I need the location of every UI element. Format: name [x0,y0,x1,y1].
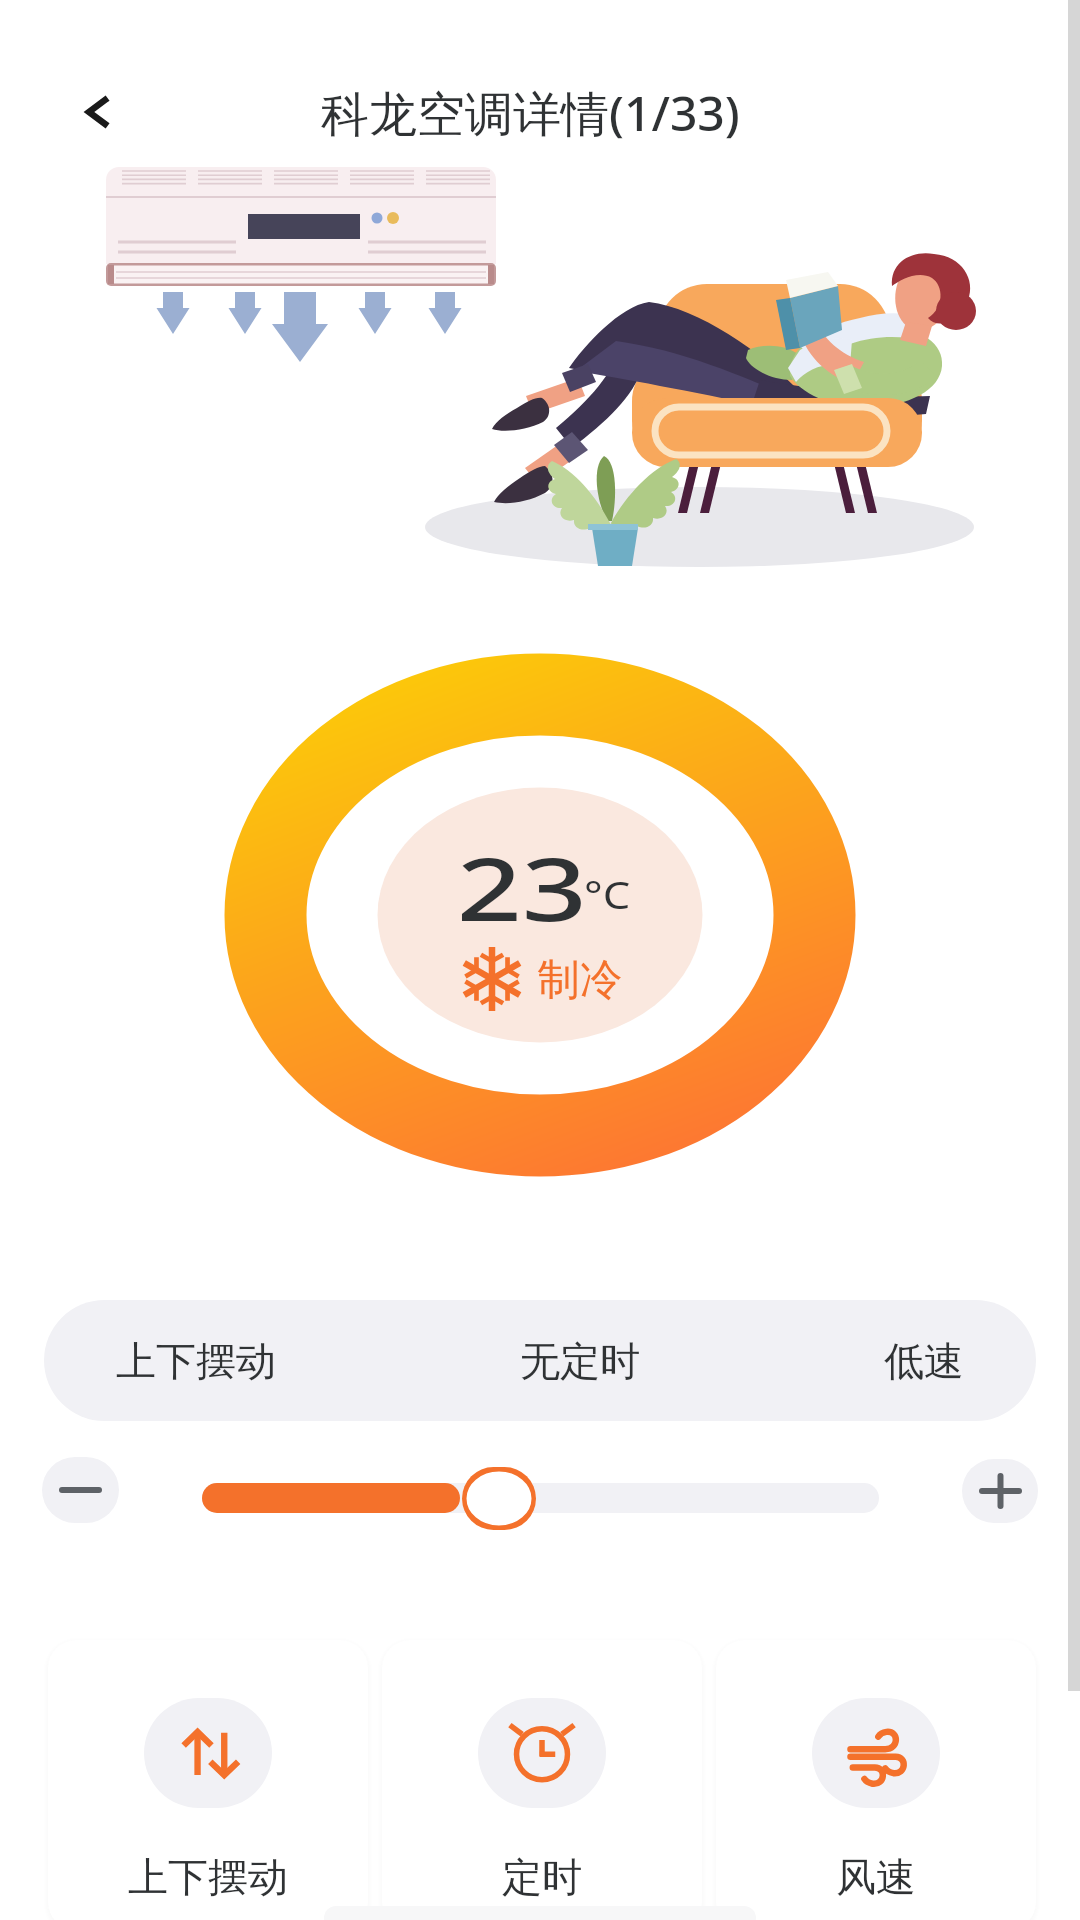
staticText: 风速 [836,1852,916,1902]
button[interactable]: Temperature slider [462,1467,536,1530]
staticText: 上下摆动 [128,1852,288,1902]
staticText: °C [584,869,631,920]
staticText: 上下摆动 [116,1336,276,1386]
staticText: 23 [457,829,587,930]
staticText: 制冷 [538,952,622,1005]
button[interactable]: Increase temperature [962,1459,1038,1523]
staticText: 无定时 [520,1336,640,1386]
button[interactable]: 无定时 [520,1300,640,1421]
button[interactable]: 上下摆动 [48,1640,368,1920]
staticText: 定时 [502,1852,582,1902]
button[interactable]: 定时 [382,1640,702,1920]
staticText: 低速 [884,1336,964,1386]
button[interactable]: 上下摆动 [116,1300,276,1421]
button[interactable]: Back [58,76,130,148]
button[interactable]: Decrease temperature [42,1457,119,1523]
staticText: 科龙空调详情(1/33) [321,80,740,146]
button[interactable]: 风速 [716,1640,1036,1920]
button[interactable]: 低速 [884,1300,964,1421]
